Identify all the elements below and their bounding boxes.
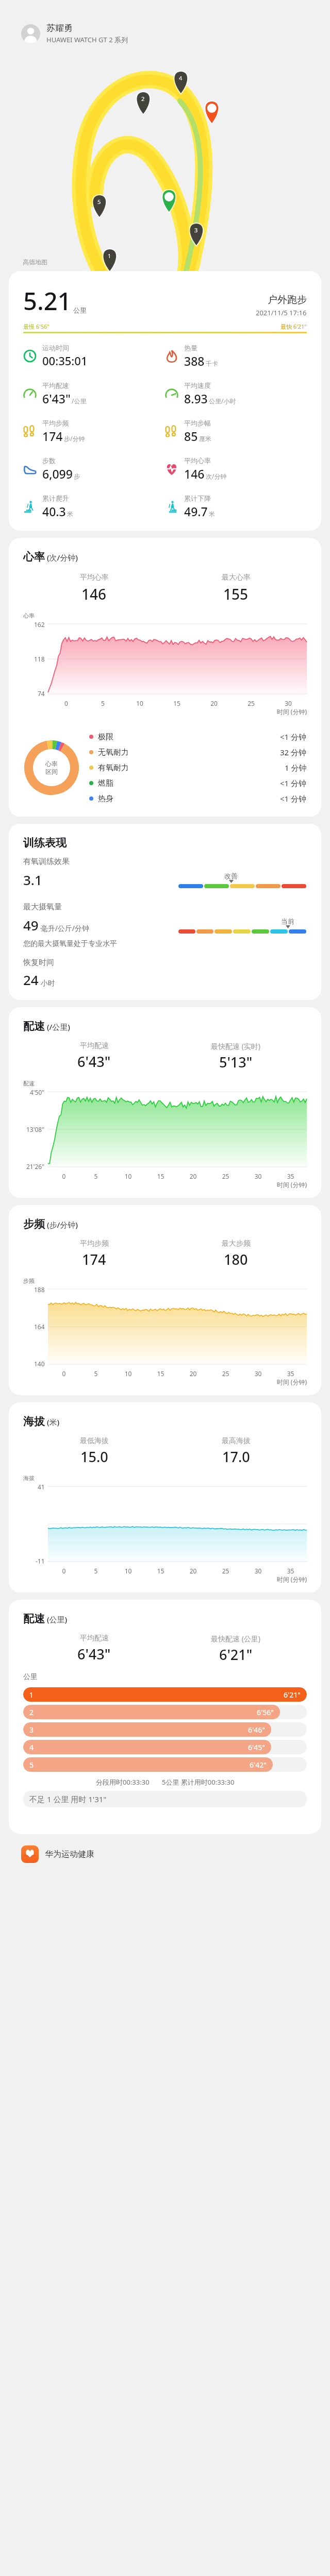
staticText: 5公里 累计用时00:33:30 <box>162 1777 235 1787</box>
staticText: 步 <box>74 472 80 480</box>
button[interactable]: 平均步频 <box>23 419 165 444</box>
staticText: 区间 <box>45 768 58 775</box>
staticText: 10 <box>112 1567 144 1575</box>
staticText: (公里) <box>45 1614 68 1624</box>
staticText: 20 <box>195 699 233 707</box>
staticText: 步数 <box>42 456 56 465</box>
staticText: 平均心率 <box>80 573 109 582</box>
staticText: 30 <box>270 699 307 707</box>
staticText: 最慢 6'56" <box>23 323 49 330</box>
staticText: 时间 (分钟) <box>23 1575 307 1583</box>
staticText: 25 <box>209 1567 242 1575</box>
button[interactable]: 累计爬升 <box>23 494 165 519</box>
staticText: 3.1 <box>23 871 42 889</box>
staticText: 心率 <box>23 612 35 619</box>
staticText: 配速 <box>23 1020 45 1033</box>
staticText: 次/分钟 <box>206 472 227 480</box>
staticText: 千卡 <box>206 360 218 367</box>
staticText: 49 <box>23 916 39 934</box>
staticText: 15 <box>144 1567 177 1575</box>
button[interactable]: 平均心率 <box>165 456 307 482</box>
button[interactable]: 华为运动健康 <box>21 1845 330 1863</box>
staticText: 配速 <box>23 1080 35 1087</box>
staticText: 20 <box>177 1567 209 1575</box>
staticText: 49.7 <box>184 503 208 519</box>
staticText: 3 <box>194 226 198 234</box>
staticText: 118 <box>34 655 45 663</box>
staticText: 平均心率 <box>184 456 211 465</box>
staticText: 6'46" <box>248 1725 265 1735</box>
staticText: 最高海拔 <box>222 1436 251 1446</box>
staticText: 15.0 <box>80 1447 108 1466</box>
staticText: 3 <box>29 1725 34 1735</box>
button[interactable]: 平均速度 <box>165 381 307 406</box>
staticText: -11 <box>36 1557 45 1565</box>
button[interactable]: 2 <box>23 1705 307 1719</box>
staticText: 恢复时间 <box>23 958 54 968</box>
staticText: 174 <box>82 1250 106 1269</box>
button[interactable]: 热量 <box>165 344 307 369</box>
staticText: 388 <box>184 353 205 369</box>
staticText: 小时 <box>39 978 55 988</box>
staticText: 6'43" <box>42 391 71 406</box>
staticText: 5 <box>80 1567 112 1575</box>
staticText: 极限 <box>98 732 113 742</box>
staticText: 24 <box>23 971 39 989</box>
staticText: 最大心率 <box>222 573 251 582</box>
staticText: 户外跑步 <box>268 294 307 306</box>
button[interactable]: 步数 <box>23 456 165 482</box>
button[interactable]: 苏耀勇 <box>21 23 330 44</box>
staticText: 30 <box>242 1369 274 1378</box>
staticText: 分段用时00:33:30 <box>96 1777 150 1787</box>
staticText: 25 <box>233 699 270 707</box>
staticText: 时间 (分钟) <box>23 707 307 716</box>
staticText: 时间 (分钟) <box>23 1180 307 1189</box>
staticText: 热量 <box>184 344 197 352</box>
staticText: 平均配速 <box>42 381 69 389</box>
staticText: 10 <box>121 699 158 707</box>
staticText: 最大步频 <box>222 1239 251 1248</box>
staticText: 4 <box>179 74 183 82</box>
staticText: HUAWEI WATCH GT 2 系列 <box>46 35 128 44</box>
staticText: 5.21 <box>23 284 72 317</box>
staticText: 0 <box>48 1369 80 1378</box>
staticText: 心率 <box>23 550 45 564</box>
staticText: 6'45" <box>248 1742 265 1752</box>
staticText: 海拔 <box>23 1415 45 1428</box>
staticText: 17.0 <box>222 1447 250 1466</box>
button[interactable]: 5 <box>23 1757 307 1772</box>
staticText: 140 <box>34 1360 45 1368</box>
staticText: 155 <box>223 584 249 604</box>
staticText: 20 <box>177 1369 209 1378</box>
staticText: 改善 <box>224 872 238 880</box>
staticText: 平均步幅 <box>184 419 211 427</box>
button[interactable]: 运动时间 <box>23 344 165 368</box>
button[interactable]: 累计下降 <box>165 494 307 519</box>
staticText: 燃脂 <box>98 778 113 788</box>
staticText: 米 <box>67 510 73 518</box>
staticText: 累计下降 <box>184 494 211 502</box>
staticText: 6'21" <box>219 1645 253 1664</box>
staticText: 海拔 <box>23 1475 35 1482</box>
staticText: 30 <box>242 1172 274 1180</box>
button[interactable]: 3 <box>23 1722 307 1737</box>
staticText: 有氧训练效果 <box>23 857 70 867</box>
staticText: 米 <box>209 510 215 518</box>
staticText: 配速 <box>23 1612 45 1625</box>
staticText: 厘米 <box>199 435 211 443</box>
staticText: 最低海拔 <box>80 1436 109 1446</box>
staticText: 平均步频 <box>42 419 69 427</box>
staticText: 累计爬升 <box>42 494 69 502</box>
staticText: 35 <box>274 1369 307 1378</box>
staticText: 2021/11/5 17:16 <box>256 308 307 317</box>
button[interactable]: 平均步幅 <box>165 419 307 444</box>
staticText: 您的最大摄氧量处于专业水平 <box>23 939 117 948</box>
button[interactable]: 1 <box>23 1687 307 1702</box>
staticText: 公里 <box>23 1672 38 1682</box>
staticText: 8.93 <box>184 391 208 406</box>
button[interactable]: 4 <box>23 1740 307 1754</box>
button[interactable]: 平均配速 <box>23 381 165 406</box>
staticText: 公里 <box>73 306 87 314</box>
staticText: 10 <box>112 1369 144 1378</box>
staticText: 32 分钟 <box>280 747 307 757</box>
